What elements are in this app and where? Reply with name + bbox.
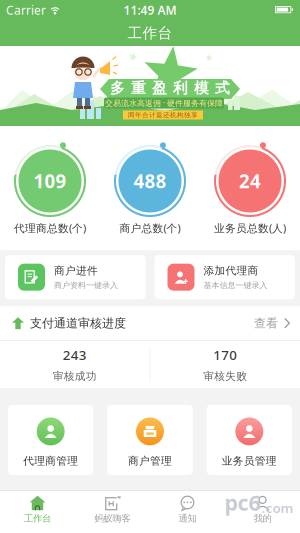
staticText: 查看 xyxy=(254,316,278,330)
staticText: 多重盈利模式 xyxy=(110,79,230,97)
staticText: 商户总数(个) xyxy=(119,221,180,235)
staticText: 243 xyxy=(63,346,87,364)
staticText: 商户管理 xyxy=(128,454,172,467)
button[interactable]: 支付通道审核进度 xyxy=(0,306,300,340)
staticText: 通知 xyxy=(178,513,196,524)
staticText: 代理商管理 xyxy=(23,454,78,467)
staticText: 工作台 xyxy=(127,24,172,42)
staticText: 代理商总数(个) xyxy=(14,221,86,235)
button[interactable]: 业务员管理 xyxy=(207,405,292,475)
staticText: .com xyxy=(261,499,293,517)
staticText: 我的 xyxy=(253,513,271,524)
button[interactable]: 代理商管理 xyxy=(8,405,93,475)
button[interactable]: 商户管理 xyxy=(107,405,193,475)
staticText: 工作台 xyxy=(24,513,51,524)
staticText: 两年合计返还机构独享 xyxy=(128,111,198,119)
staticText: 24 xyxy=(239,169,261,193)
staticText: 业务员总数(人) xyxy=(214,221,286,235)
staticText: 审核成功 xyxy=(53,370,97,383)
staticText: 488 xyxy=(133,169,166,193)
staticText: Carrier xyxy=(6,2,46,18)
button[interactable]: 蚂蚁嗨客 xyxy=(75,496,150,524)
staticText: 审核失败 xyxy=(203,370,247,383)
staticText: 支付通道审核进度 xyxy=(30,316,126,330)
staticText: pc6 xyxy=(224,488,260,517)
button[interactable]: 添加代理商 xyxy=(154,255,295,299)
staticText: 商户进件 xyxy=(54,264,98,277)
button[interactable]: 商户进件 xyxy=(5,255,145,299)
staticText: 109 xyxy=(33,169,66,193)
staticText: 11:49 AM xyxy=(123,2,176,18)
button[interactable]: 通知 xyxy=(150,496,225,524)
staticText: 业务员管理 xyxy=(222,454,277,467)
staticText: 170 xyxy=(213,346,237,364)
button[interactable]: 工作台 xyxy=(0,496,75,524)
staticText: 添加代理商 xyxy=(203,264,258,277)
button[interactable]: 我的 xyxy=(225,496,300,524)
staticText: 交易流水高返佣 · 硬件服务有保障 xyxy=(105,98,223,108)
staticText: 商户资料一键录入 xyxy=(54,280,118,290)
staticText: 蚂蚁嗨客 xyxy=(94,513,130,524)
staticText: 基本信息一键录入 xyxy=(203,280,267,290)
